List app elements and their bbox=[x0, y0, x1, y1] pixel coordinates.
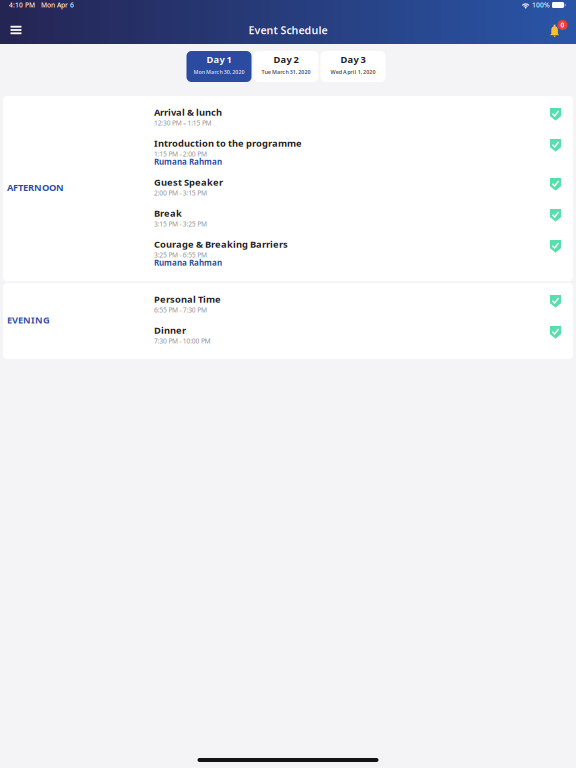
staticText: Dinner bbox=[154, 324, 186, 336]
staticText: Day 1 bbox=[206, 53, 231, 66]
staticText: Wed April 1, 2020 bbox=[330, 68, 375, 76]
staticText: 12:30 PM – 1:15 PM bbox=[154, 118, 212, 127]
button[interactable]: Day 3 bbox=[320, 51, 385, 82]
staticText: Break bbox=[154, 207, 182, 219]
button[interactable]: Dinner bbox=[154, 324, 561, 347]
staticText: Rumana Rahman bbox=[154, 257, 222, 268]
button[interactable]: Day 2 bbox=[253, 51, 318, 82]
staticText: Introduction to the programme bbox=[154, 137, 302, 149]
staticText: AFTERNOON bbox=[7, 181, 64, 194]
staticText: 1:15 PM - 2:00 PM bbox=[154, 149, 207, 158]
staticText: Event Schedule bbox=[248, 23, 327, 37]
staticText: Arrival & lunch bbox=[154, 106, 222, 118]
staticText: Personal Time bbox=[154, 293, 221, 305]
button[interactable]: Courage & Breaking Barriers bbox=[154, 238, 561, 269]
staticText: 3:25 PM - 6:55 PM bbox=[154, 250, 207, 259]
staticText: Guest Speaker bbox=[154, 176, 223, 188]
staticText: 4:10 PM bbox=[9, 1, 35, 9]
button[interactable]: Break bbox=[154, 207, 561, 230]
staticText: Day 3 bbox=[340, 53, 365, 66]
staticText: 100% bbox=[532, 1, 550, 9]
button[interactable]: Menu bbox=[2, 21, 34, 45]
staticText: 7:30 PM - 10:00 PM bbox=[154, 336, 211, 345]
staticText: EVENING bbox=[7, 314, 50, 326]
button[interactable]: Arrival & lunch bbox=[154, 106, 561, 129]
staticText: Courage & Breaking Barriers bbox=[154, 238, 288, 250]
button[interactable]: Notifications bbox=[542, 21, 574, 45]
staticText: Mon March 30, 2020 bbox=[193, 68, 244, 76]
staticText: Mon Apr 6 bbox=[41, 1, 74, 9]
staticText: 3:15 PM - 3:25 PM bbox=[154, 219, 207, 228]
staticText: 2:00 PM - 3:15 PM bbox=[154, 188, 207, 197]
staticText: Tue March 31, 2020 bbox=[261, 68, 310, 76]
staticText: Rumana Rahman bbox=[154, 156, 222, 167]
staticText: Day 2 bbox=[273, 53, 298, 66]
button[interactable]: Guest Speaker bbox=[154, 176, 561, 199]
button[interactable]: Personal Time bbox=[154, 293, 561, 316]
button[interactable]: Day 1 bbox=[186, 51, 251, 82]
staticText: 0 bbox=[560, 21, 564, 29]
staticText: 6:55 PM - 7:30 PM bbox=[154, 305, 207, 314]
button[interactable]: Introduction to the programme bbox=[154, 137, 561, 168]
